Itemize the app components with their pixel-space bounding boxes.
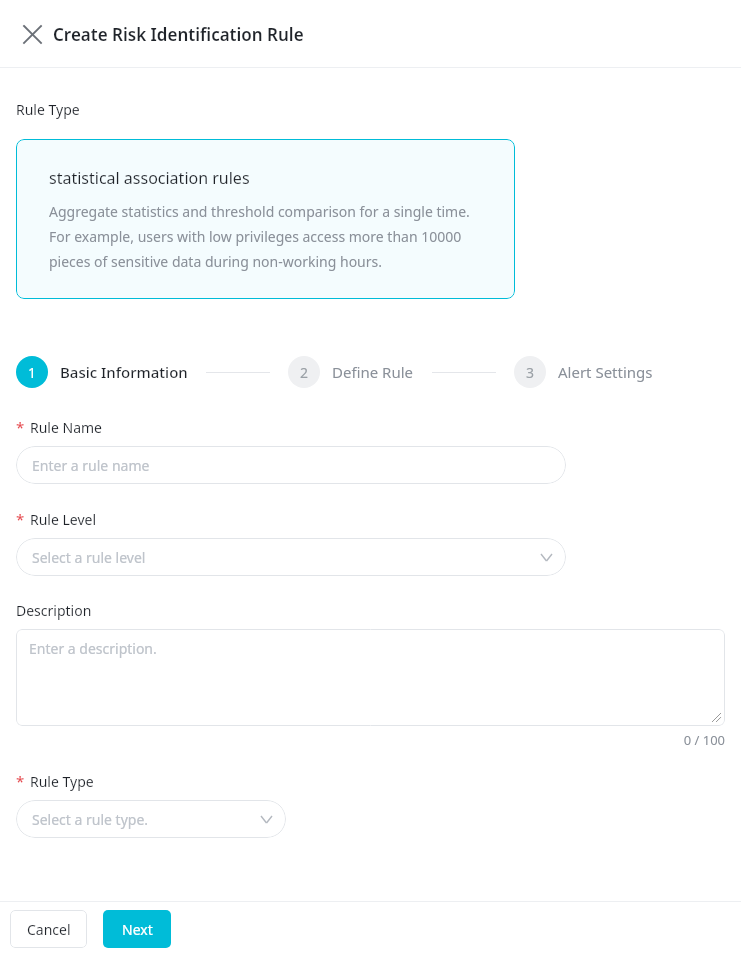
staticText: Basic Information bbox=[60, 362, 188, 382]
staticText: 2 bbox=[300, 363, 309, 382]
staticText: Select a rule level bbox=[32, 548, 146, 567]
staticText: statistical association rules bbox=[49, 167, 250, 189]
staticText: Next bbox=[122, 920, 153, 939]
button[interactable]: 3 bbox=[514, 356, 653, 388]
button[interactable]: Select a rule type. bbox=[16, 800, 286, 838]
staticText: Enter a rule name bbox=[32, 456, 150, 475]
button[interactable]: Close bbox=[14, 16, 50, 52]
staticText: Select a rule type. bbox=[32, 810, 149, 829]
button[interactable]: Cancel bbox=[10, 910, 87, 948]
staticText: Rule Name bbox=[30, 418, 102, 437]
button[interactable]: 2 bbox=[288, 356, 414, 388]
staticText: Rule Type bbox=[30, 772, 94, 791]
staticText: Alert Settings bbox=[558, 362, 653, 382]
button[interactable]: statistical association rules bbox=[16, 139, 515, 299]
staticText: Rule Level bbox=[30, 510, 97, 529]
staticText: Create Risk Identification Rule bbox=[53, 23, 304, 46]
staticText: * bbox=[16, 771, 25, 791]
staticText: Description bbox=[16, 601, 92, 620]
staticText: Cancel bbox=[27, 920, 71, 939]
button[interactable]: Next bbox=[103, 910, 171, 948]
staticText: Aggregate statistics and threshold compa… bbox=[49, 202, 482, 271]
staticText: Rule Type bbox=[16, 100, 80, 119]
button[interactable]: 1 bbox=[16, 356, 188, 388]
staticText: * bbox=[16, 417, 25, 437]
button[interactable]: Select a rule level bbox=[16, 538, 566, 576]
staticText: Enter a description. bbox=[29, 639, 157, 658]
staticText: * bbox=[16, 509, 25, 529]
staticText: 1 bbox=[28, 363, 37, 382]
staticText: 0 / 100 bbox=[16, 731, 725, 749]
button[interactable]: Enter a description. bbox=[16, 629, 725, 726]
staticText: Define Rule bbox=[332, 362, 414, 382]
staticText: 3 bbox=[526, 363, 535, 382]
button[interactable]: Enter a rule name bbox=[16, 446, 566, 484]
